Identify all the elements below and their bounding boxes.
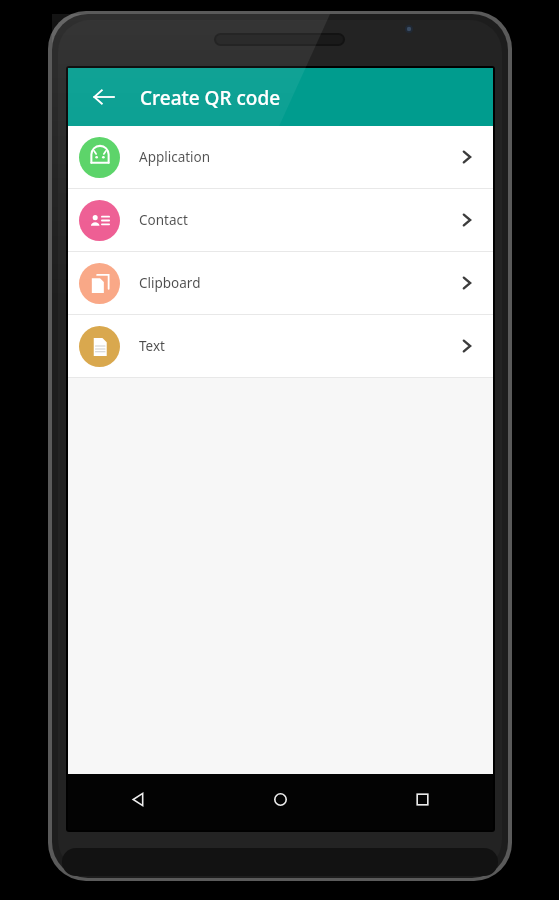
button[interactable]: Clipboard (68, 252, 493, 314)
staticText: Text (139, 337, 165, 355)
button[interactable]: Back (68, 774, 209, 830)
staticText: Create QR code (140, 85, 281, 111)
button[interactable]: Back (82, 75, 126, 119)
button[interactable]: Contact (68, 189, 493, 251)
button[interactable]: Text (68, 315, 493, 377)
button[interactable]: Home (209, 774, 351, 830)
staticText: Contact (139, 211, 188, 229)
button[interactable]: Application (68, 126, 493, 188)
staticText: Application (139, 148, 211, 166)
staticText: Clipboard (139, 274, 201, 292)
button[interactable]: Recent apps (351, 774, 493, 830)
